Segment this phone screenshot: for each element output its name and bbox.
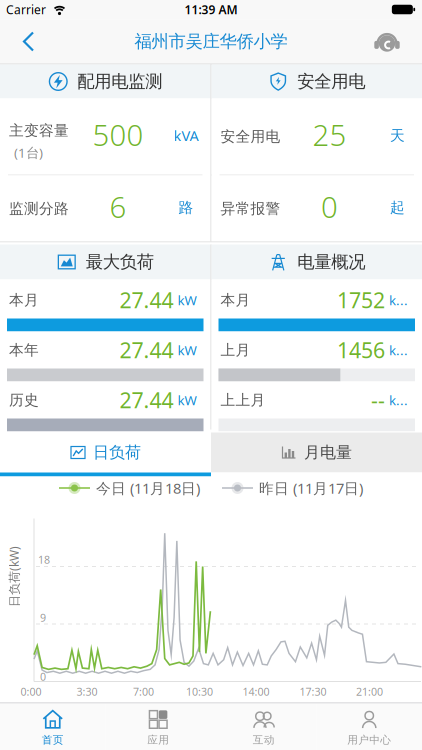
- staticText: 用户中心: [347, 733, 391, 746]
- staticText: 历史: [9, 391, 39, 409]
- button[interactable]: 应用: [105, 703, 211, 750]
- staticText: 路: [178, 198, 193, 216]
- staticText: 互动: [253, 733, 275, 746]
- button[interactable]: 月电量: [211, 432, 422, 476]
- staticText: 6: [109, 187, 126, 226]
- staticText: kW: [177, 391, 196, 409]
- staticText: 电量概况: [297, 251, 365, 273]
- button[interactable]: [0, 19, 36, 63]
- staticText: 起: [390, 198, 405, 216]
- staticText: 27.44: [119, 336, 173, 364]
- staticText: 0:00: [20, 684, 41, 699]
- staticText: 监测分路: [9, 199, 69, 217]
- staticText: Carrier: [6, 1, 46, 17]
- staticText: 月电量: [304, 443, 352, 462]
- staticText: 27.44: [119, 286, 173, 314]
- staticText: 配用电监测: [77, 71, 162, 92]
- staticText: 日负荷(kW): [0, 568, 44, 584]
- staticText: 10:30: [186, 684, 213, 699]
- staticText: --: [371, 386, 385, 414]
- staticText: 本月: [220, 291, 250, 309]
- staticText: 17:30: [299, 684, 326, 699]
- button[interactable]: 互动: [211, 703, 316, 750]
- staticText: 首页: [42, 733, 64, 746]
- staticText: 7:00: [133, 684, 154, 699]
- button[interactable]: 用户中心: [316, 703, 422, 750]
- staticText: 天: [390, 126, 405, 144]
- staticText: 日负荷: [93, 443, 141, 462]
- button[interactable]: [374, 19, 422, 63]
- staticText: 上月: [220, 341, 250, 359]
- staticText: k...: [389, 341, 408, 359]
- staticText: 27.44: [119, 386, 173, 414]
- staticText: 昨日 (11月17日): [259, 478, 363, 498]
- button[interactable]: 首页: [0, 703, 105, 750]
- staticText: 今日 (11月18日): [96, 478, 200, 498]
- staticText: 11:39 AM: [184, 1, 237, 17]
- staticText: 福州市吴庄华侨小学: [134, 31, 287, 52]
- staticText: 1752: [337, 286, 385, 314]
- staticText: 18: [38, 552, 50, 567]
- staticText: 9: [40, 610, 46, 625]
- staticText: 3:30: [76, 684, 97, 699]
- staticText: 本年: [9, 341, 39, 359]
- staticText: 21:00: [356, 684, 383, 699]
- staticText: k...: [389, 391, 408, 409]
- staticText: 25: [312, 115, 346, 154]
- staticText: 应用: [147, 733, 169, 746]
- staticText: k...: [389, 291, 408, 309]
- staticText: 安全用电: [297, 71, 365, 92]
- staticText: 本月: [9, 291, 39, 309]
- staticText: 14:00: [242, 684, 269, 699]
- staticText: 最大负荷: [86, 251, 154, 273]
- staticText: 安全用电: [220, 127, 280, 145]
- staticText: (1台): [14, 144, 43, 161]
- staticText: 0: [40, 669, 46, 684]
- staticText: 500: [92, 115, 143, 154]
- staticText: 1456: [337, 336, 385, 364]
- staticText: kW: [177, 341, 196, 359]
- button[interactable]: 日负荷: [0, 432, 211, 476]
- staticText: 异常报警: [220, 199, 280, 217]
- staticText: 上上月: [220, 391, 265, 409]
- staticText: 主变容量: [9, 122, 69, 140]
- staticText: kVA: [173, 126, 198, 145]
- staticText: kW: [177, 291, 196, 309]
- staticText: 0: [321, 187, 338, 226]
